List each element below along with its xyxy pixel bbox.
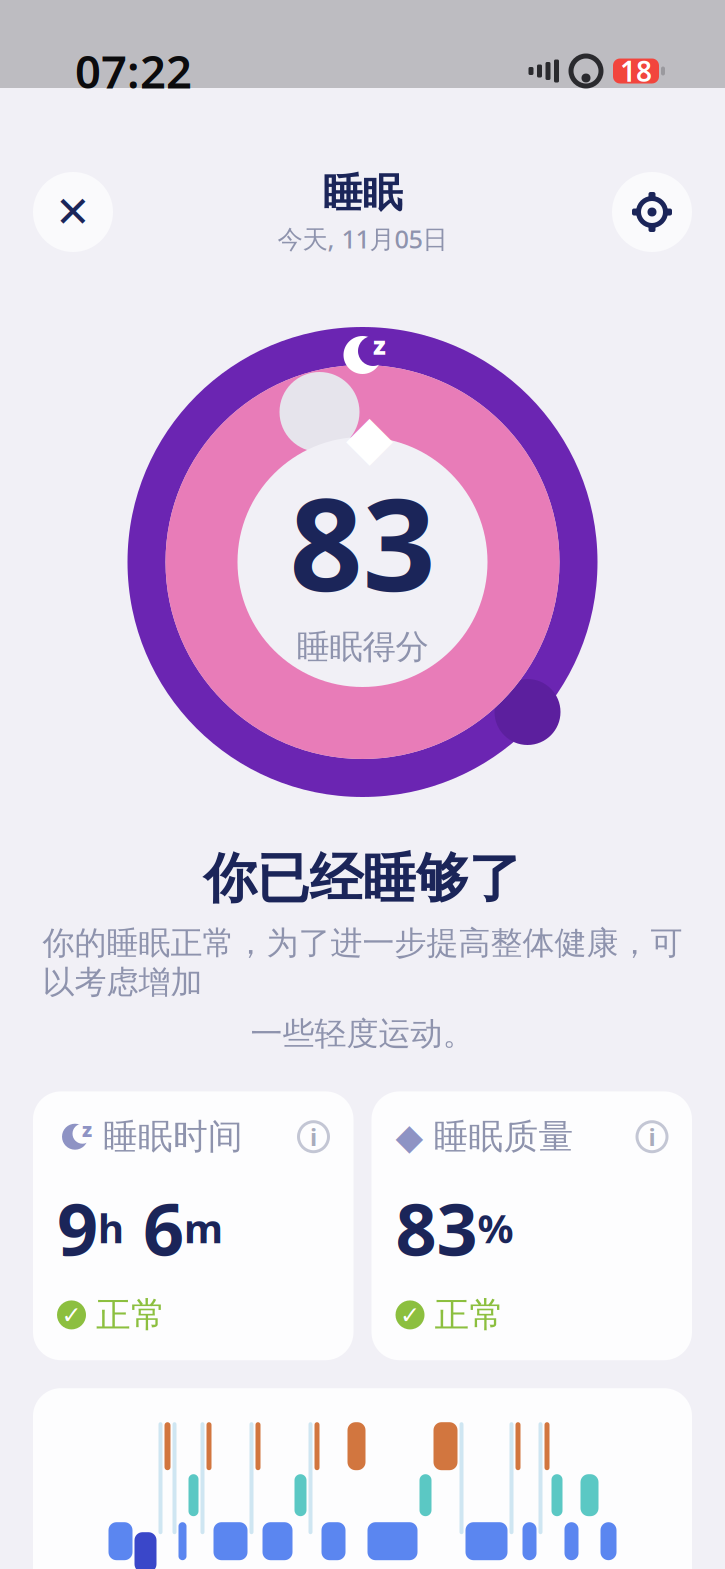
staticText: 睡眠: [322, 169, 402, 218]
staticText: ✓: [400, 1301, 420, 1328]
button[interactable]: 设置: [612, 172, 692, 252]
staticText: 今天, 11月05日: [277, 222, 447, 255]
staticText: 睡眠质量: [433, 1115, 573, 1158]
staticText: 你的睡眠正常，为了进一步提高整体健康，可以考虑增加: [42, 923, 682, 1002]
staticText: %: [477, 1201, 513, 1254]
staticText: 83: [395, 1180, 477, 1276]
staticText: 83: [289, 456, 435, 626]
staticText: m: [184, 1201, 223, 1254]
staticText: 6: [124, 1180, 184, 1276]
staticText: ◆: [395, 1116, 423, 1157]
staticText: 07:22: [75, 41, 192, 101]
staticText: 一些轻度运动。: [250, 1014, 474, 1053]
staticText: i: [310, 1121, 317, 1153]
staticText: 正常: [96, 1294, 166, 1336]
button[interactable]: 关闭: [33, 172, 113, 252]
staticText: 18: [620, 52, 652, 90]
staticText: z: [82, 1116, 92, 1142]
staticText: h: [98, 1201, 124, 1254]
staticText: ✓: [61, 1301, 81, 1328]
staticText: 睡眠时间: [103, 1115, 243, 1158]
button[interactable]: z: [33, 1091, 353, 1360]
staticText: ◆: [346, 402, 393, 472]
staticText: 正常: [434, 1294, 504, 1336]
staticText: 睡眠得分: [296, 626, 428, 667]
staticText: 你已经睡够了: [203, 846, 521, 911]
staticText: 9: [57, 1180, 98, 1276]
staticText: i: [648, 1121, 655, 1153]
staticText: ✕: [55, 188, 91, 236]
button[interactable]: ◆: [371, 1091, 692, 1360]
staticText: z: [373, 328, 386, 362]
